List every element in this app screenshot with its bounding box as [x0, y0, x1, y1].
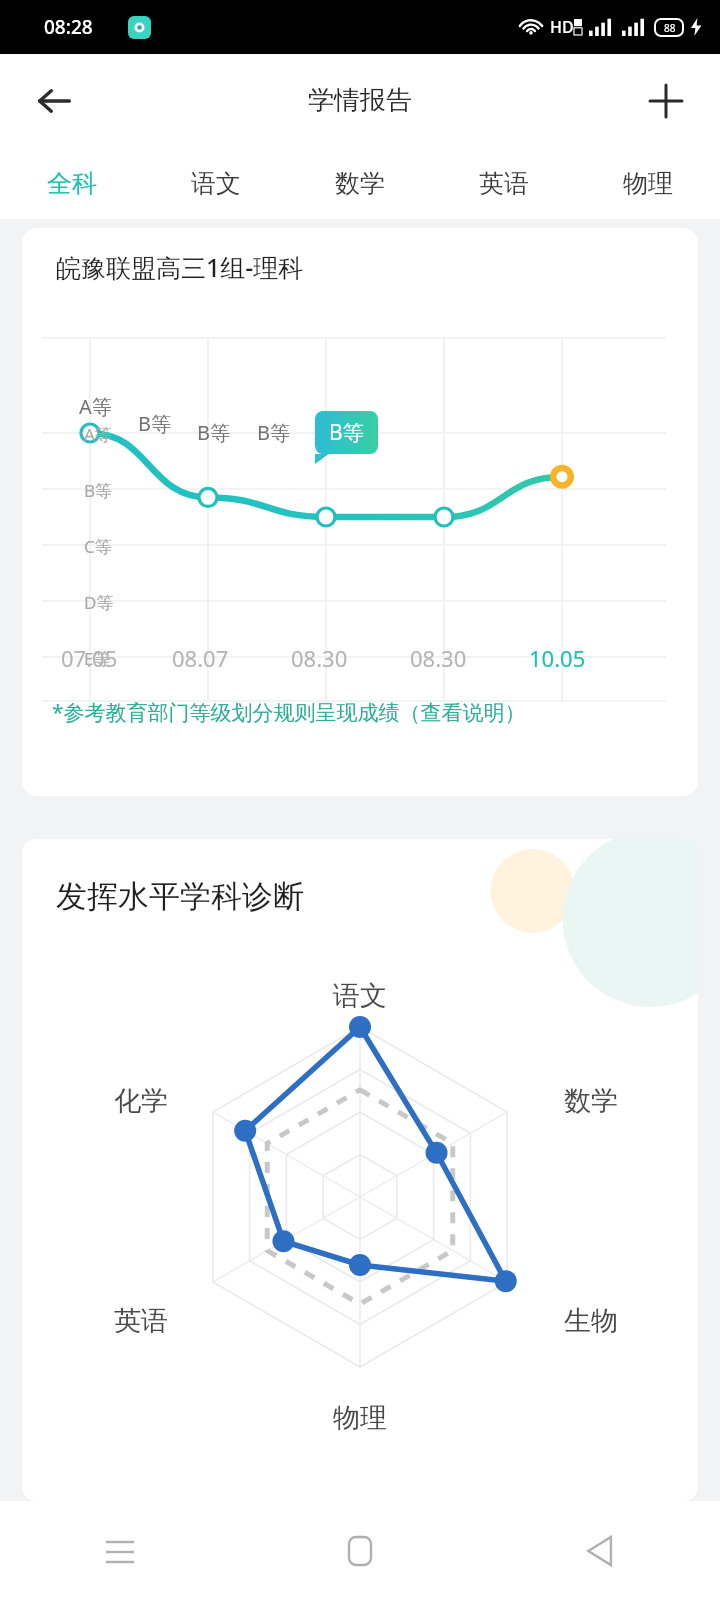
staticText: C等 [84, 535, 112, 558]
staticText: A等 [84, 423, 112, 446]
staticText: 数学 [564, 1084, 618, 1118]
staticText: 皖豫联盟高三1组-理科 [56, 250, 304, 284]
staticText: 88 [664, 21, 676, 35]
button[interactable]: Back [480, 1501, 720, 1600]
staticText: B等 [138, 410, 171, 437]
staticText: E等 [84, 647, 111, 670]
staticText: D等 [84, 591, 114, 614]
staticText: 08.30 [291, 643, 348, 673]
button[interactable]: Back [22, 69, 86, 133]
staticText: 英语 [114, 1304, 168, 1338]
button[interactable]: 数学 [288, 147, 432, 219]
staticText: B等 [84, 479, 113, 502]
staticText: A等 [79, 393, 112, 420]
staticText: 发挥水平学科诊断 [56, 877, 304, 916]
staticText: 化学 [114, 1084, 168, 1118]
button[interactable]: 语文 [144, 147, 288, 219]
button[interactable]: Home [240, 1501, 480, 1600]
staticText: 数学 [335, 168, 385, 199]
button[interactable]: Recents [0, 1501, 240, 1600]
button[interactable]: *参考教育部门等级划分规则呈现成绩（查看说明） [52, 698, 526, 727]
staticText: B等 [197, 419, 230, 446]
staticText: HD [550, 16, 574, 38]
staticText: 学情报告 [308, 84, 412, 117]
staticText: 语文 [333, 979, 387, 1013]
button[interactable]: Add [634, 69, 698, 133]
staticText: B等 [329, 418, 364, 447]
button[interactable]: 全科 [0, 147, 144, 219]
button[interactable]: 英语 [432, 147, 576, 219]
staticText: 英语 [479, 168, 529, 199]
staticText: 07.05 [61, 643, 118, 673]
staticText: 生物 [564, 1304, 618, 1338]
staticText: 语文 [191, 168, 241, 199]
staticText: 08.30 [410, 643, 467, 673]
staticText: 08.07 [172, 643, 229, 673]
staticText: B等 [257, 419, 290, 446]
staticText: 物理 [623, 168, 673, 199]
staticText: 08:28 [44, 14, 93, 40]
staticText: 10.05 [529, 643, 586, 673]
button[interactable]: 物理 [576, 147, 720, 219]
staticText: 物理 [333, 1401, 387, 1435]
staticText: 全科 [47, 168, 97, 199]
